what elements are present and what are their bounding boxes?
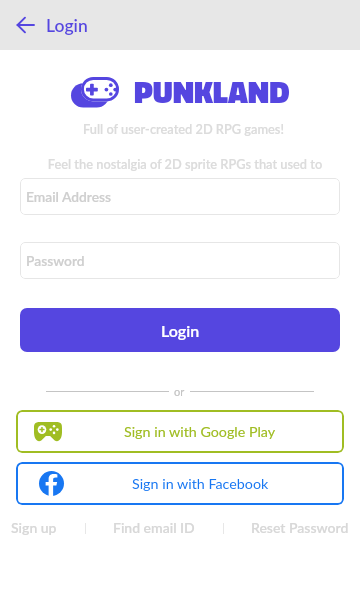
button[interactable]: Back bbox=[8, 8, 42, 42]
button[interactable]: Sign in with Google Play bbox=[16, 410, 344, 453]
staticText: | bbox=[84, 521, 87, 534]
staticText: Password bbox=[26, 252, 85, 269]
staticText: Feel the nostalgia of 2D sprite RPGs tha… bbox=[10, 156, 360, 171]
button[interactable]: Reset Password bbox=[251, 519, 349, 536]
staticText: Find email ID bbox=[113, 519, 195, 536]
button[interactable]: Login bbox=[20, 308, 340, 352]
staticText: Login bbox=[161, 321, 200, 340]
staticText: Sign in with Facebook bbox=[132, 475, 269, 492]
staticText: | bbox=[222, 521, 225, 534]
staticText: Sign in with Google Play bbox=[124, 423, 276, 440]
button[interactable]: Find email ID bbox=[113, 519, 195, 536]
staticText: Full of user-created 2D RPG games! bbox=[7, 121, 360, 136]
staticText: Sign up bbox=[11, 519, 57, 536]
staticText: PUNKLAND bbox=[134, 68, 290, 115]
button[interactable]: Email Address bbox=[20, 178, 340, 215]
staticText: Login bbox=[46, 15, 88, 36]
button[interactable]: Password bbox=[20, 242, 340, 279]
staticText: Reset Password bbox=[251, 519, 349, 536]
staticText: or bbox=[174, 385, 185, 398]
button[interactable]: Sign in with Facebook bbox=[16, 462, 344, 505]
button[interactable]: Sign up bbox=[11, 519, 57, 536]
staticText: Email Address bbox=[26, 188, 112, 205]
